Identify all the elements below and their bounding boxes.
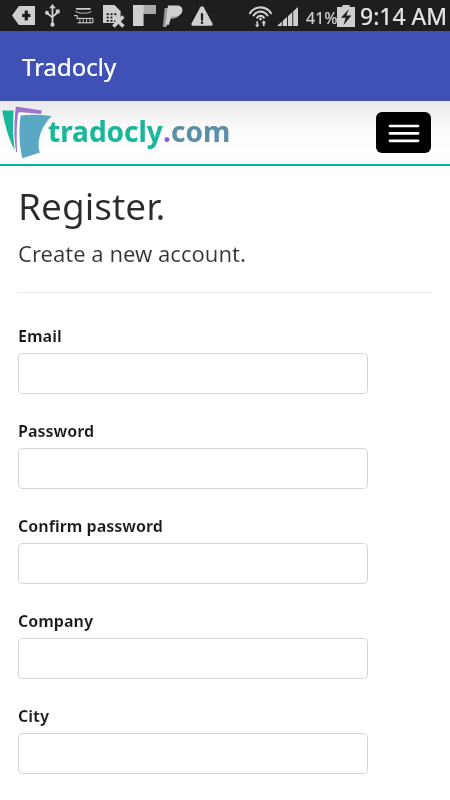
staticText: tradocly	[48, 112, 163, 150]
button[interactable]	[18, 543, 368, 584]
staticText: Tradocly	[22, 50, 117, 83]
staticText: Password	[18, 420, 95, 442]
staticText: Confirm password	[18, 515, 163, 537]
button[interactable]	[18, 448, 368, 489]
staticText: City	[18, 705, 50, 727]
staticText: 41%	[306, 7, 338, 29]
button[interactable]	[18, 353, 368, 394]
button[interactable]	[18, 733, 368, 774]
button[interactable]: Tradocly	[0, 31, 450, 101]
staticText: .	[163, 112, 171, 150]
staticText: Email	[18, 325, 62, 347]
staticText: com	[171, 112, 231, 150]
staticText: Register.	[18, 180, 166, 230]
staticText: Create a new account.	[18, 238, 246, 268]
staticText: 9:14 AM	[360, 0, 448, 31]
button[interactable]	[18, 638, 368, 679]
staticText: Company	[18, 610, 94, 632]
button[interactable]: Menu	[376, 112, 431, 153]
